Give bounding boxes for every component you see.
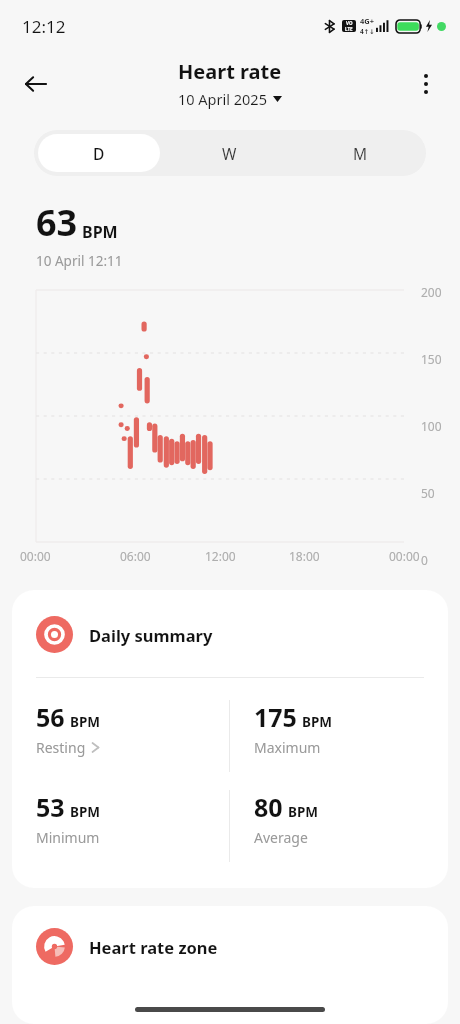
button[interactable]: Back bbox=[12, 60, 60, 108]
staticText: 56 bbox=[36, 700, 65, 734]
staticText: 0 bbox=[421, 552, 428, 566]
staticText: 63 bbox=[36, 198, 78, 247]
staticText: 53 bbox=[36, 790, 65, 824]
staticText: Resting bbox=[36, 738, 86, 757]
button[interactable]: M bbox=[299, 134, 422, 172]
staticText: BPM bbox=[302, 713, 333, 731]
staticText: 80 bbox=[254, 790, 283, 824]
staticText: 4G+ bbox=[360, 16, 375, 26]
staticText: 00:00 bbox=[389, 548, 420, 564]
staticText: 10 April 2025 bbox=[178, 89, 267, 109]
staticText: LTE bbox=[345, 26, 353, 32]
button[interactable]: Heart rate zone bbox=[12, 906, 448, 987]
button[interactable]: More options bbox=[402, 60, 450, 108]
staticText: 12:12 bbox=[22, 15, 66, 38]
staticText: 175 bbox=[254, 700, 297, 734]
staticText: Minimum bbox=[36, 828, 100, 847]
staticText: Heart rate bbox=[178, 58, 282, 85]
button[interactable]: 10 April 2025 bbox=[174, 88, 286, 110]
staticText: Daily summary bbox=[89, 624, 213, 646]
button[interactable]: D bbox=[38, 134, 160, 172]
staticText: D bbox=[93, 143, 105, 164]
staticText: 150 bbox=[421, 351, 442, 365]
staticText: Heart rate zone bbox=[89, 936, 218, 958]
staticText: BPM bbox=[70, 713, 101, 731]
staticText: 10 April 12:11 bbox=[36, 252, 123, 270]
staticText: Maximum bbox=[254, 738, 321, 757]
staticText: 4↑↓ bbox=[360, 27, 375, 36]
staticText: M bbox=[353, 143, 368, 164]
staticText: 00:00 bbox=[20, 548, 51, 564]
staticText: Average bbox=[254, 828, 308, 847]
staticText: BPM bbox=[82, 221, 118, 243]
staticText: BPM bbox=[288, 803, 319, 821]
staticText: 12:00 bbox=[205, 548, 236, 564]
staticText: 100 bbox=[421, 418, 442, 432]
button[interactable]: Daily summary bbox=[12, 612, 448, 657]
button[interactable]: 56 bbox=[12, 700, 229, 757]
staticText: 200 bbox=[421, 284, 442, 298]
staticText: 50 bbox=[421, 485, 435, 499]
button[interactable]: W bbox=[168, 134, 291, 172]
staticText: 06:00 bbox=[120, 548, 151, 564]
staticText: 18:00 bbox=[289, 548, 320, 564]
staticText: BPM bbox=[70, 803, 101, 821]
staticText: W bbox=[222, 143, 237, 164]
staticText: VO bbox=[346, 20, 353, 26]
